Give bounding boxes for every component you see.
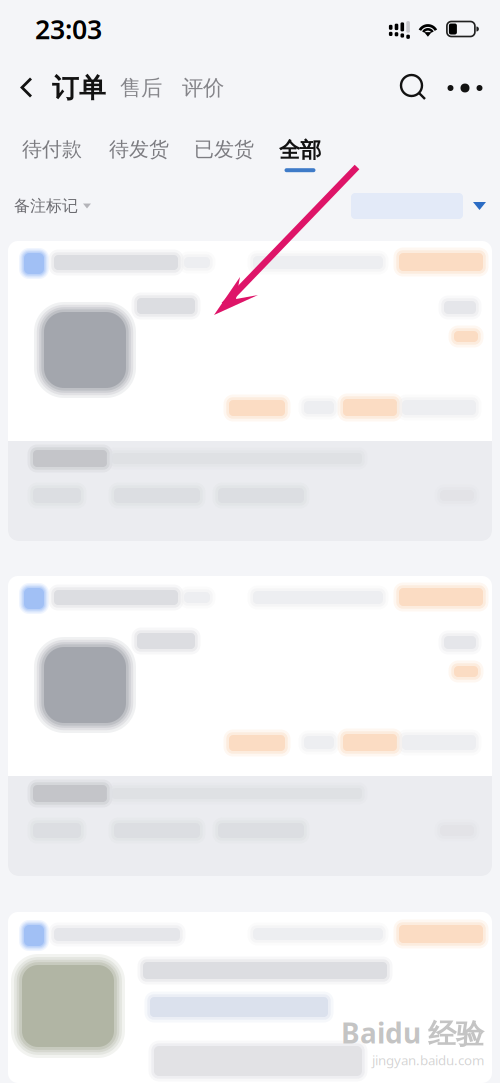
- staticText: 23:03: [35, 11, 102, 47]
- button[interactable]: Back: [0, 60, 52, 115]
- button[interactable]: [8, 241, 492, 541]
- button[interactable]: [8, 912, 492, 1083]
- button[interactable]: 待发货: [109, 118, 169, 180]
- staticText: 订单: [52, 72, 106, 104]
- button[interactable]: 订单: [52, 58, 106, 118]
- staticText: 已发货: [194, 137, 254, 162]
- button[interactable]: 待付款: [22, 118, 82, 180]
- button[interactable]: [351, 185, 486, 227]
- button[interactable]: 评价: [182, 61, 224, 115]
- button[interactable]: 售后: [120, 61, 162, 115]
- staticText: Baidu 经验: [341, 1014, 484, 1051]
- button[interactable]: 备注标记: [14, 184, 91, 228]
- staticText: 待付款: [22, 137, 82, 162]
- staticText: 备注标记: [14, 196, 78, 216]
- staticText: 评价: [182, 75, 224, 101]
- button[interactable]: 已发货: [194, 118, 254, 180]
- button[interactable]: Search: [394, 68, 434, 108]
- button[interactable]: 全部: [279, 118, 321, 180]
- button[interactable]: More: [444, 68, 486, 108]
- staticText: 待发货: [109, 137, 169, 162]
- staticText: jingyan.baidu.com: [372, 1051, 484, 1069]
- staticText: 售后: [120, 75, 162, 101]
- button[interactable]: [8, 576, 492, 876]
- staticText: 全部: [279, 137, 321, 163]
